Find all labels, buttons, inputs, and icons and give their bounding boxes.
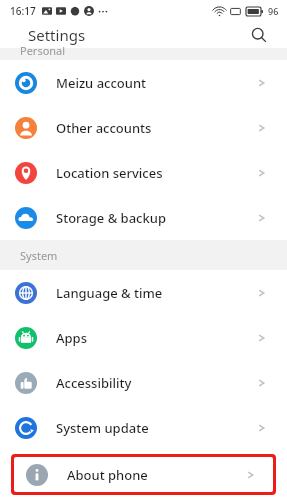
button[interactable]: Language & time	[0, 270, 287, 315]
button[interactable]: Other accounts	[0, 105, 287, 150]
staticText: Apps	[56, 329, 258, 347]
staticText: Other accounts	[56, 119, 258, 137]
staticText: System update	[56, 419, 258, 437]
staticText: Settings	[28, 25, 86, 45]
staticText: Storage & backup	[56, 209, 258, 227]
button[interactable]: System update	[0, 405, 287, 450]
button[interactable]: Storage & backup	[0, 195, 287, 240]
staticText: About phone	[67, 466, 247, 484]
staticText: Meizu account	[56, 74, 258, 92]
staticText: Location services	[56, 164, 258, 182]
button[interactable]: Meizu account	[0, 60, 287, 105]
staticText: Personal	[20, 43, 66, 55]
staticText: 96	[268, 5, 279, 17]
staticText: 16:17	[10, 4, 36, 18]
staticText: Accessibility	[56, 374, 258, 392]
button[interactable]: About phone	[14, 457, 273, 492]
button[interactable]: Location services	[0, 150, 287, 195]
button[interactable]: Apps	[0, 315, 287, 360]
button[interactable]: Accessibility	[0, 360, 287, 405]
button[interactable]: Search	[247, 23, 271, 47]
staticText: System	[20, 248, 58, 263]
staticText: Language & time	[56, 284, 258, 302]
